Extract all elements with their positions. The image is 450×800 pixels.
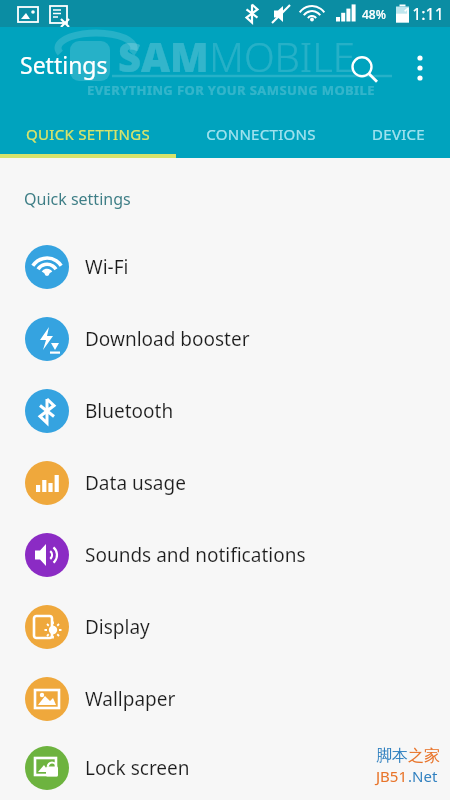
button[interactable]: Download booster <box>0 303 450 375</box>
staticText: Bluetooth <box>85 398 174 424</box>
button[interactable]: Search <box>344 50 384 90</box>
staticText: MOBILE <box>209 29 355 83</box>
staticText: EVERYTHING FOR YOUR SAMSUNG MOBILE <box>87 81 375 99</box>
button[interactable]: DEVICE <box>346 110 450 158</box>
staticText: CONNECTIONS <box>206 124 316 144</box>
staticText: SAM <box>118 29 209 83</box>
staticText: Settings <box>20 49 108 80</box>
staticText: Display <box>85 614 150 640</box>
staticText: Sounds and notifications <box>85 542 306 568</box>
staticText: JB51 <box>376 766 408 786</box>
button[interactable]: Display <box>0 591 450 663</box>
staticText: QUICK SETTINGS <box>26 124 150 144</box>
button[interactable]: Bluetooth <box>0 375 450 447</box>
button[interactable]: Wallpaper <box>0 663 450 735</box>
staticText: 之家 <box>408 746 440 766</box>
staticText: 脚本 <box>376 746 408 766</box>
staticText: .Net <box>408 766 438 786</box>
staticText: Wallpaper <box>85 686 176 712</box>
button[interactable]: More options <box>402 50 438 86</box>
button[interactable]: Lock screen <box>0 735 450 800</box>
staticText: Wi-Fi <box>85 254 129 280</box>
button[interactable]: CONNECTIONS <box>176 110 346 158</box>
staticText: 48% <box>362 6 386 22</box>
staticText: DEVICE <box>372 124 425 144</box>
button[interactable]: Wi-Fi <box>0 231 450 303</box>
button[interactable]: QUICK SETTINGS <box>0 110 176 158</box>
staticText: Lock screen <box>85 755 190 781</box>
button[interactable]: Data usage <box>0 447 450 519</box>
button[interactable]: Sounds and notifications <box>0 519 450 591</box>
staticText: Download booster <box>85 326 250 352</box>
staticText: 11:11 <box>403 3 444 25</box>
staticText: Data usage <box>85 470 186 496</box>
staticText: Quick settings <box>24 188 131 210</box>
